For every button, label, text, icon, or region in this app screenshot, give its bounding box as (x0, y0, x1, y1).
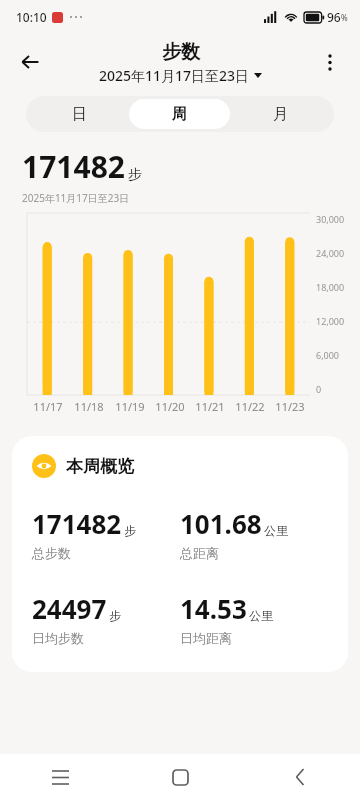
staticText: 公里 (249, 608, 273, 623)
staticText: 日均步数 (32, 630, 84, 646)
button[interactable]: 171482 (32, 506, 180, 561)
button[interactable]: 周 (129, 99, 230, 129)
button[interactable]: 日 (29, 99, 129, 129)
staticText: 日均距离 (180, 630, 232, 646)
button[interactable]: Recent apps (0, 754, 120, 800)
staticText: 步 (124, 523, 136, 538)
staticText: 总步数 (32, 545, 71, 561)
staticText: 11/21 (195, 399, 225, 414)
button[interactable]: Back (8, 40, 52, 84)
staticText: 101.68 (180, 506, 262, 541)
staticText: 6,000 (316, 349, 340, 361)
button[interactable]: 14.53 (180, 591, 328, 646)
staticText: 24497 (32, 591, 107, 626)
button[interactable]: 月 (230, 99, 331, 129)
staticText: 周 (172, 105, 187, 124)
staticText: 171482 (32, 506, 122, 541)
staticText: 24,000 (316, 247, 345, 259)
staticText: 10:10 (16, 9, 47, 25)
button[interactable]: 2025年11月17日至23日 (99, 66, 262, 85)
staticText: 本周概览 (66, 456, 134, 477)
button[interactable]: 101.68 (180, 506, 328, 561)
button[interactable]: 24497 (32, 591, 180, 646)
button[interactable]: More options (308, 40, 352, 84)
staticText: 2025年11月17日至23日 (99, 66, 250, 85)
staticText: 18,000 (316, 281, 345, 293)
staticText: 11/18 (74, 399, 104, 414)
staticText: 96 (327, 9, 341, 25)
staticText: 14.53 (180, 591, 247, 626)
staticText: 总距离 (180, 545, 219, 561)
staticText: 步 (109, 608, 121, 623)
staticText: 月 (273, 105, 288, 124)
staticText: 11/17 (33, 399, 63, 414)
staticText: 11/20 (155, 399, 185, 414)
staticText: 11/19 (115, 399, 145, 414)
staticText: 公里 (264, 523, 288, 538)
staticText: 日 (72, 105, 87, 124)
staticText: 步数 (162, 40, 200, 64)
button[interactable]: Home (120, 754, 240, 800)
staticText: 0 (316, 383, 322, 395)
staticText: 11/22 (235, 399, 265, 414)
staticText: % (341, 12, 348, 23)
button[interactable]: Back (240, 754, 360, 800)
staticText: 步 (128, 166, 142, 184)
staticText: 171482 (22, 146, 125, 187)
staticText: 12,000 (316, 315, 345, 327)
staticText: 30,000 (316, 213, 345, 225)
staticText: 2025年11月17日至23日 (22, 191, 130, 205)
staticText: 11/23 (275, 399, 305, 414)
